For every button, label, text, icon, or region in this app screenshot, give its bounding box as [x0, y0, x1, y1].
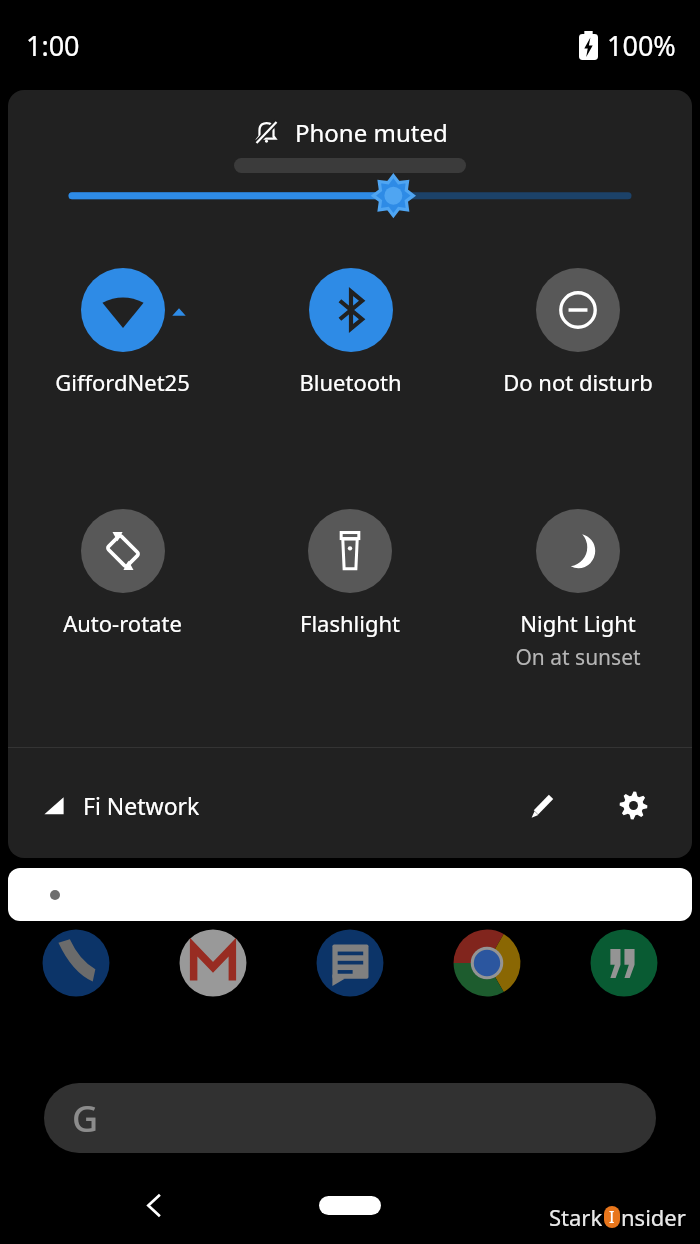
button[interactable]: Home [319, 1196, 381, 1215]
button[interactable]: Night Light [513, 509, 643, 672]
button[interactable]: Flashlight [298, 509, 402, 638]
button[interactable]: Messages [306, 919, 394, 1007]
button[interactable]: Settings [608, 780, 658, 830]
staticText: 1:00 [26, 27, 80, 64]
staticText: Do not disturb [503, 367, 653, 397]
button[interactable]: Bluetooth [297, 268, 404, 397]
staticText: Flashlight [300, 608, 400, 638]
staticText: On at sunset [515, 643, 641, 672]
button[interactable]: Phone [32, 919, 120, 1007]
button[interactable]: Do not disturb [501, 268, 655, 397]
button[interactable]: Edit [518, 780, 568, 830]
staticText: nsider [621, 1202, 686, 1232]
staticText: Bluetooth [299, 367, 402, 397]
button[interactable]: Brightness [72, 180, 628, 214]
button[interactable] [8, 868, 692, 921]
staticText: G [72, 1094, 99, 1143]
staticText: I [609, 1206, 615, 1228]
button[interactable]: Gmail [169, 919, 257, 1007]
button[interactable]: Chrome [443, 919, 531, 1007]
button[interactable]: Search [44, 1083, 656, 1153]
button[interactable]: Hangouts [580, 919, 668, 1007]
button[interactable]: GiffordNet25 [53, 268, 192, 397]
staticText: Fi Network [83, 790, 200, 821]
staticText: Phone muted [295, 116, 448, 149]
button[interactable]: Auto-rotate [61, 509, 184, 638]
button[interactable]: Back [126, 1177, 182, 1233]
staticText: GiffordNet25 [55, 367, 190, 397]
staticText: 100% [607, 27, 676, 64]
button[interactable]: Fi Network [42, 790, 518, 821]
staticText: Night Light [520, 608, 636, 638]
staticText: Stark [549, 1202, 603, 1232]
staticText: Auto-rotate [63, 608, 182, 638]
